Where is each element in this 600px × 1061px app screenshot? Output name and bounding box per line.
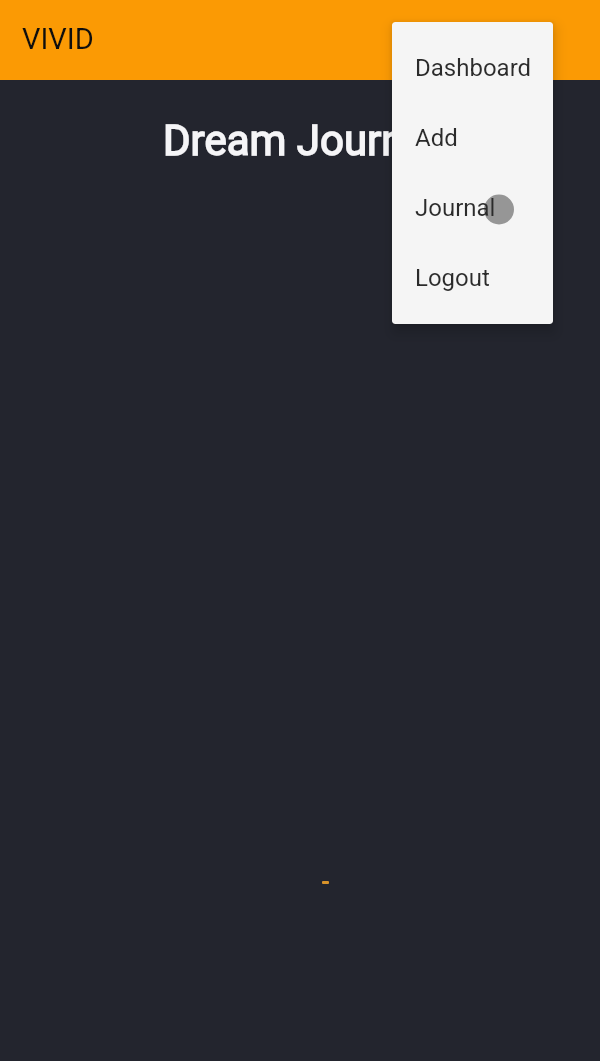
- staticText: Journal: [415, 194, 496, 222]
- staticText: Logout: [415, 264, 490, 292]
- button[interactable]: More options: [448, 16, 496, 64]
- staticText: Dream Journal: [163, 116, 438, 165]
- button[interactable]: Dashboard: [392, 33, 553, 103]
- button[interactable]: Add: [392, 103, 553, 173]
- button[interactable]: Journal: [392, 173, 553, 243]
- staticText: Add: [415, 124, 458, 152]
- staticText: Dashboard: [415, 54, 532, 82]
- staticText: VIVID: [22, 22, 94, 56]
- button[interactable]: Logout: [392, 243, 553, 313]
